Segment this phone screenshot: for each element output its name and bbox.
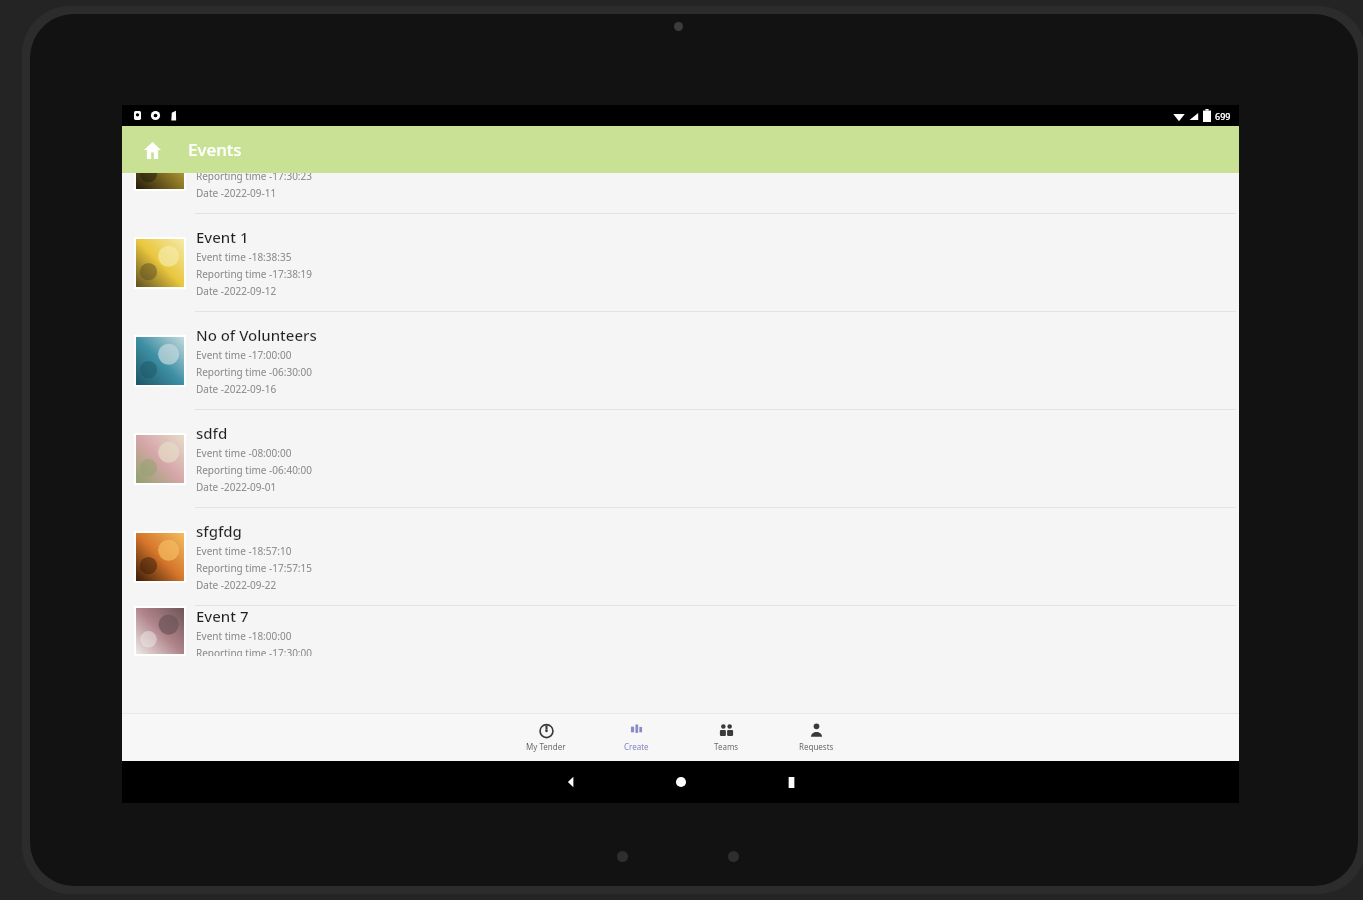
staticText: Requests — [799, 741, 834, 752]
staticText: Events — [188, 138, 242, 161]
staticText: Date -2022-09-16 — [196, 382, 277, 396]
staticText: Reporting time -17:38:19 — [196, 267, 312, 281]
staticText: Date -2022-09-12 — [196, 284, 277, 298]
staticText: sdfd — [196, 423, 228, 443]
staticText: Teams — [714, 741, 739, 752]
button[interactable]: No of Volunteers — [122, 312, 1239, 409]
staticText: Event time -18:00:00 — [196, 629, 292, 643]
staticText: Reporting time -17:57:15 — [196, 561, 312, 575]
staticText: Event time -17:00:00 — [196, 348, 292, 362]
staticText: Event time -08:00:00 — [196, 446, 292, 460]
staticText: Event time -18:38:35 — [196, 250, 292, 264]
staticText: Event 1 — [196, 227, 249, 247]
staticText: 699 — [1215, 110, 1231, 122]
staticText: Reporting time -17:30:23 — [196, 173, 312, 183]
button[interactable]: sdfd — [122, 410, 1239, 507]
staticText: sfgfdg — [196, 521, 242, 541]
button[interactable]: Teams — [681, 713, 771, 761]
staticText: Reporting time -17:30:00 — [196, 646, 312, 656]
staticText: Date -2022-09-11 — [196, 186, 277, 200]
button[interactable]: sfgfdg — [122, 508, 1239, 605]
staticText: Reporting time -06:30:00 — [196, 365, 312, 379]
button[interactable]: Requests — [771, 713, 861, 761]
button[interactable]: Home — [134, 132, 170, 168]
staticText: Date -2022-09-22 — [196, 578, 277, 592]
staticText: Create — [624, 741, 649, 752]
staticText: Reporting time -06:40:00 — [196, 463, 312, 477]
button[interactable]: Create — [591, 713, 681, 761]
staticText: No of Volunteers — [196, 325, 317, 345]
button[interactable]: Event 1 — [122, 214, 1239, 311]
button[interactable]: Back — [558, 769, 584, 795]
staticText: Date -2022-09-01 — [196, 480, 277, 494]
button[interactable]: My Tender — [501, 713, 591, 761]
button[interactable]: Recents — [778, 769, 804, 795]
staticText: My Tender — [526, 741, 566, 752]
staticText: Event time -18:57:10 — [196, 544, 292, 558]
button[interactable]: Event 7 — [122, 606, 1239, 656]
button[interactable]: Home — [668, 769, 694, 795]
button[interactable]: Event 0 — [122, 173, 1239, 213]
staticText: Event 7 — [196, 606, 249, 626]
